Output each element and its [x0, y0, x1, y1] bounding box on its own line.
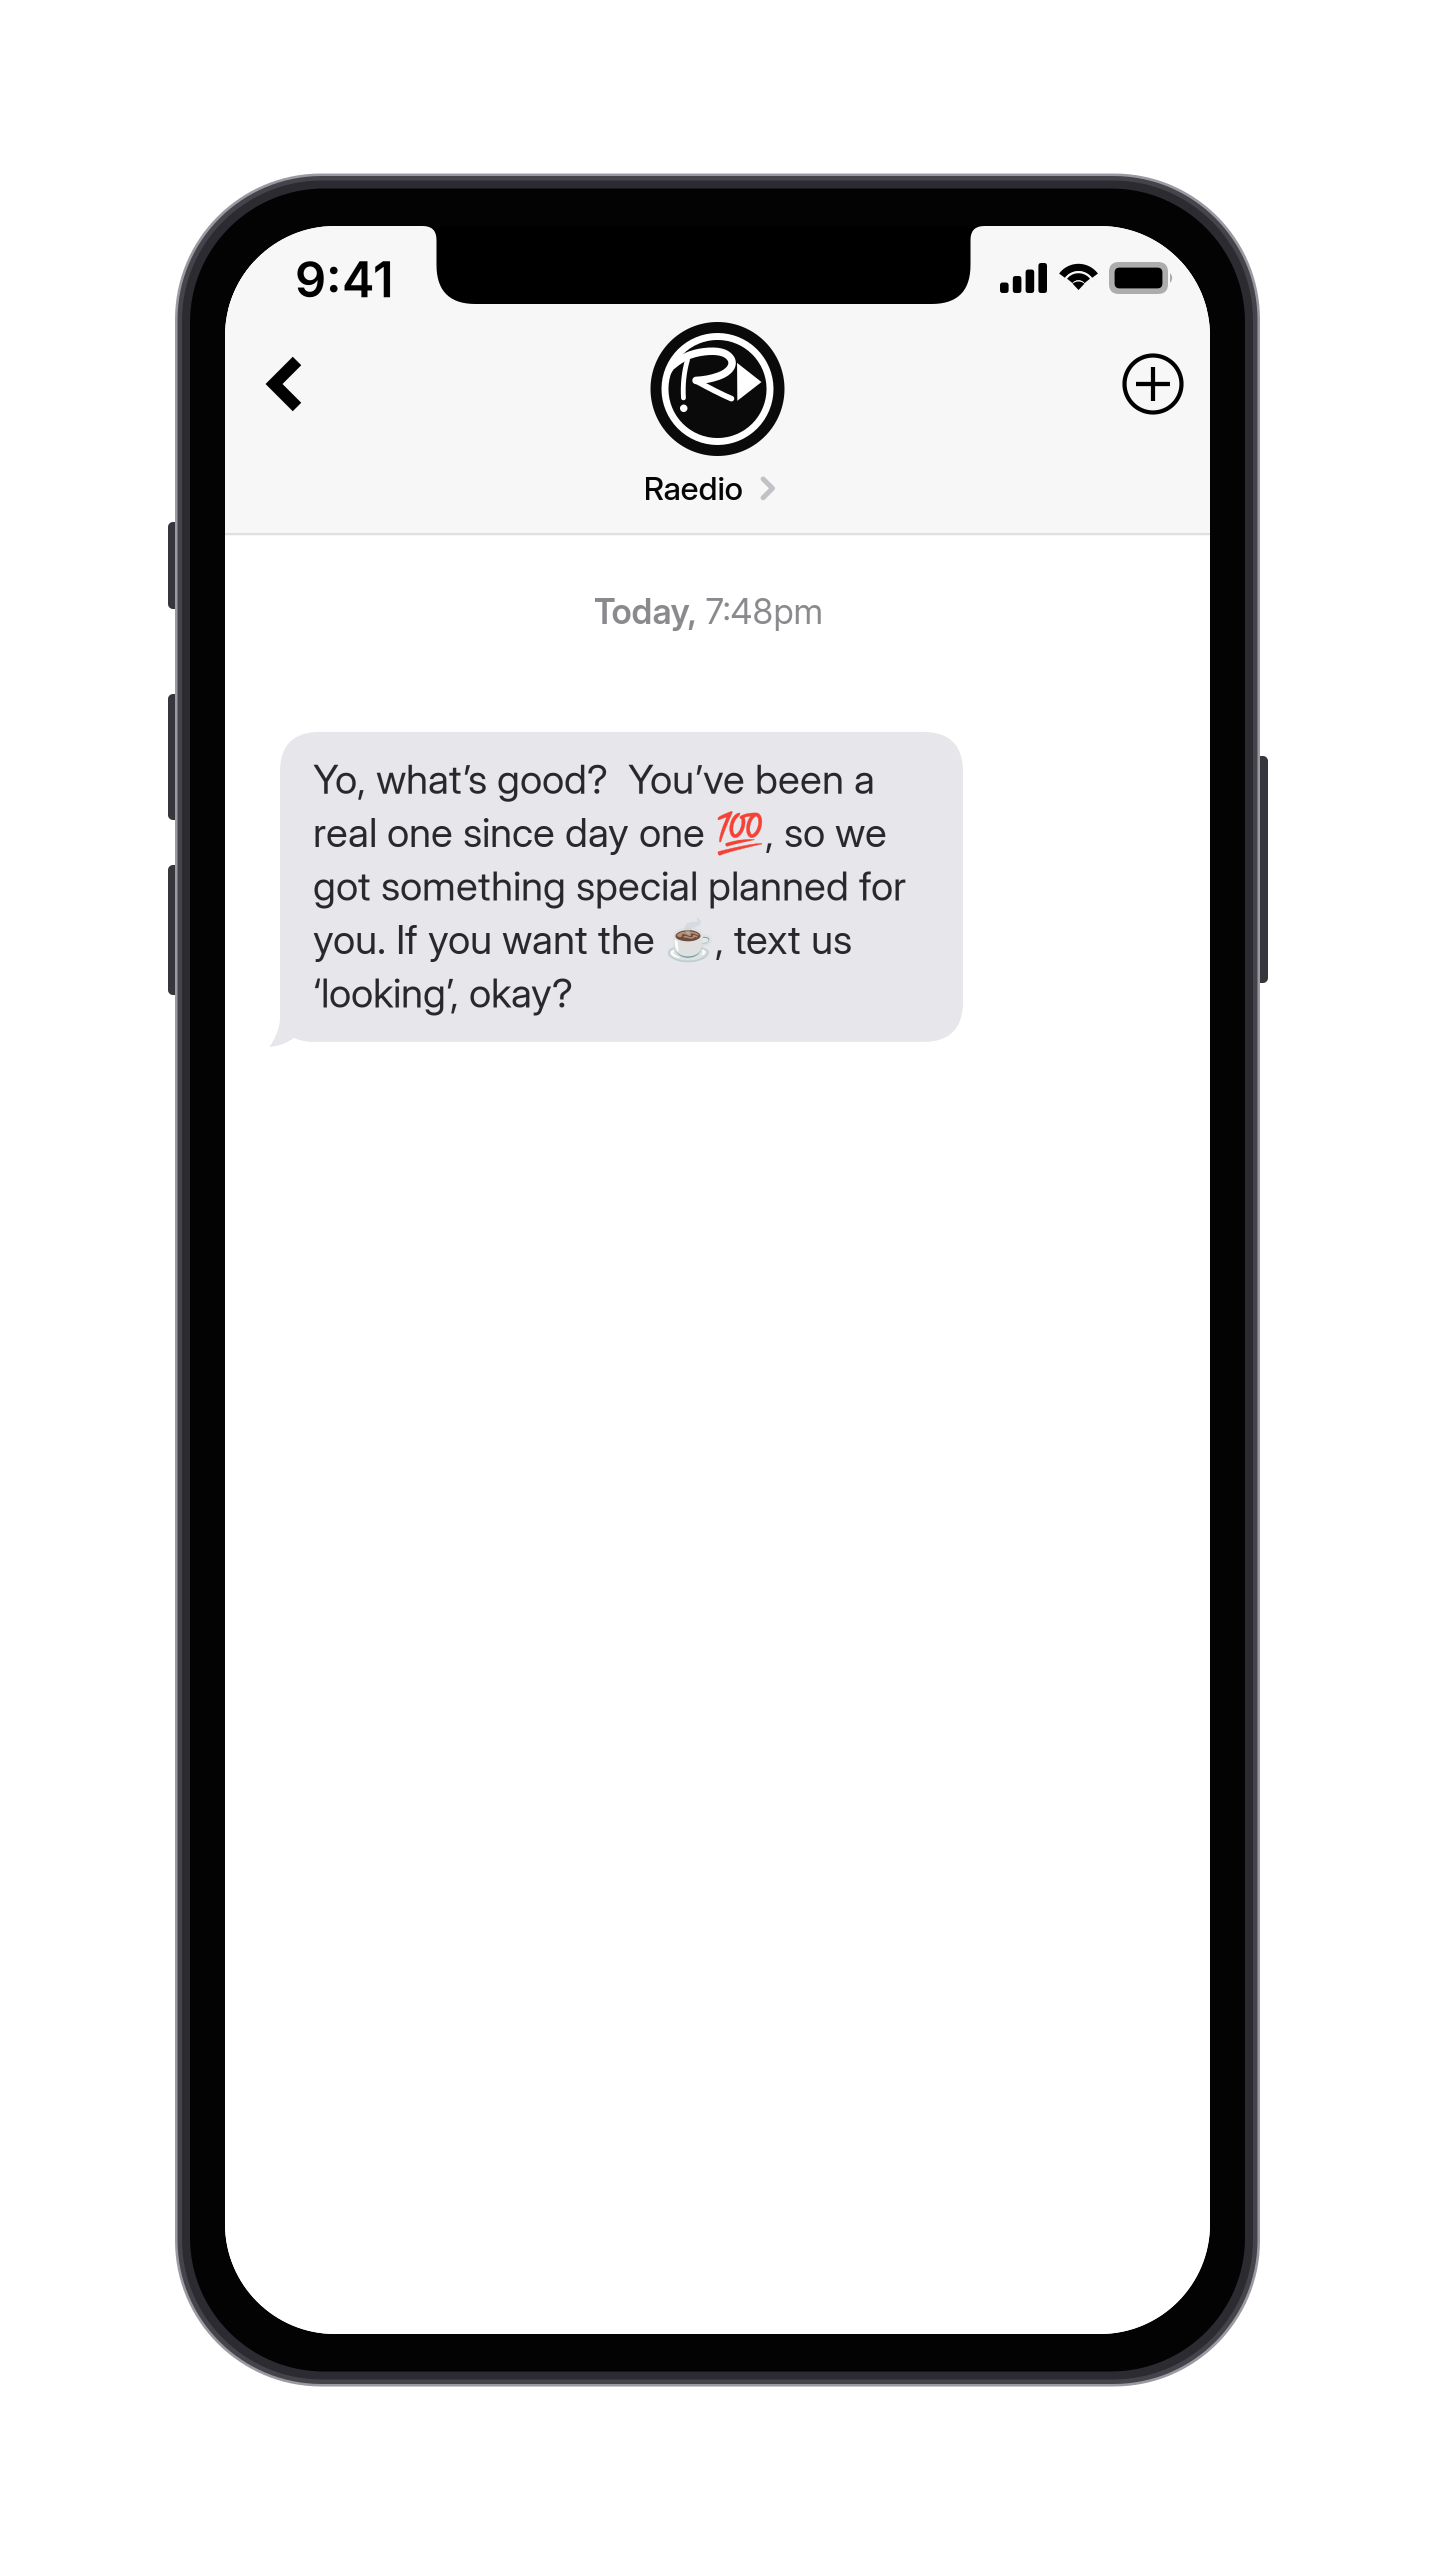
- button[interactable]: Back: [225, 335, 338, 433]
- button[interactable]: Raedio: [567, 326, 867, 516]
- staticText: Yo, what’s good? You’ve been a real one …: [313, 755, 906, 1017]
- button[interactable]: New conversation: [1094, 333, 1210, 435]
- staticText: 9:41: [295, 250, 394, 309]
- staticText: Today, 7:48pm: [593, 591, 823, 632]
- staticText: Raedio: [643, 469, 743, 508]
